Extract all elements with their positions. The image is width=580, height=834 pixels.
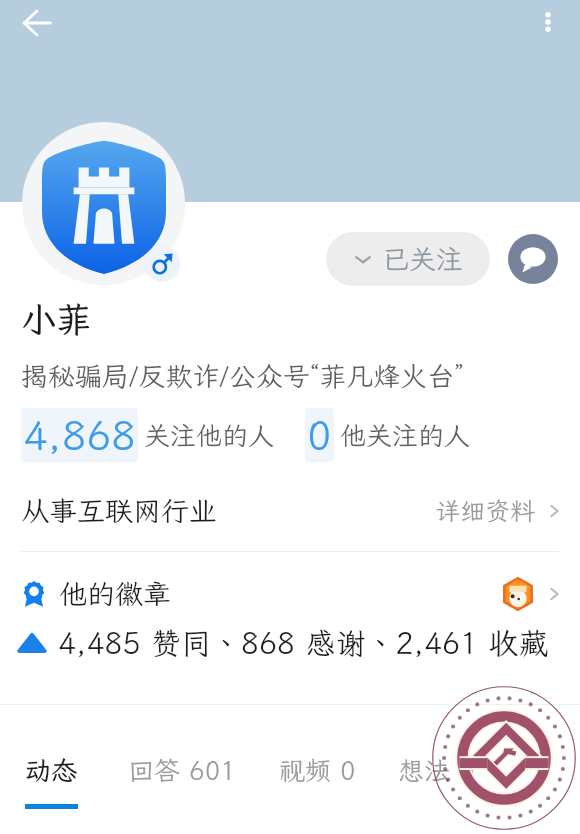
staticText: 详细资料 bbox=[435, 494, 536, 527]
staticText: 他关注的人 bbox=[340, 418, 471, 452]
button[interactable]: 从事互联网行业 bbox=[0, 486, 580, 535]
button[interactable]: 4,868 bbox=[16, 408, 280, 462]
staticText: 从事互联网行业 bbox=[21, 492, 218, 529]
staticText: 4,868 bbox=[23, 408, 136, 462]
staticText: 小菲 bbox=[21, 296, 92, 342]
staticText: 想法 0 bbox=[398, 753, 475, 787]
staticText: 4,485 赞同、868 感谢、2,461 收藏 bbox=[58, 623, 549, 663]
staticText: 他的徽章 bbox=[59, 575, 172, 612]
staticText: 揭秘骗局/反欺诈/公众号“菲凡烽火台” bbox=[21, 358, 464, 394]
button[interactable]: 想法 0 bbox=[391, 705, 481, 809]
button[interactable]: 已关注 bbox=[326, 232, 490, 286]
button[interactable]: Send message bbox=[508, 234, 558, 284]
staticText: 动态 bbox=[25, 753, 78, 787]
button[interactable]: 视频 0 bbox=[272, 705, 362, 809]
button[interactable]: 动态 bbox=[10, 705, 92, 809]
button[interactable]: More options bbox=[522, 0, 574, 48]
staticText: 回答 601 bbox=[128, 753, 236, 787]
staticText: 已关注 bbox=[382, 241, 463, 277]
button[interactable]: 他的徽章 bbox=[0, 575, 580, 612]
button[interactable]: 回答 601 bbox=[125, 705, 239, 809]
button[interactable]: 0 bbox=[300, 408, 476, 462]
staticText: 0 bbox=[307, 408, 332, 462]
staticText: 视频 0 bbox=[279, 753, 356, 787]
button[interactable]: Back bbox=[11, 0, 63, 49]
staticText: 关注他的人 bbox=[144, 418, 275, 452]
